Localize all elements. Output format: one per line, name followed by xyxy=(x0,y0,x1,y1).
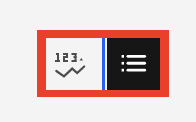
button[interactable]: Numbers xyxy=(46,38,107,90)
button[interactable]: List xyxy=(107,38,160,90)
